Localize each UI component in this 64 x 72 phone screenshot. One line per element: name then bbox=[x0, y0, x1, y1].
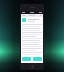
button[interactable]: Primary action bbox=[22, 57, 31, 61]
button[interactable]: App icon bbox=[22, 18, 42, 22]
button[interactable] bbox=[21, 14, 43, 17]
button[interactable]: Secondary action bbox=[33, 57, 42, 61]
other: App icon bbox=[22, 18, 26, 22]
